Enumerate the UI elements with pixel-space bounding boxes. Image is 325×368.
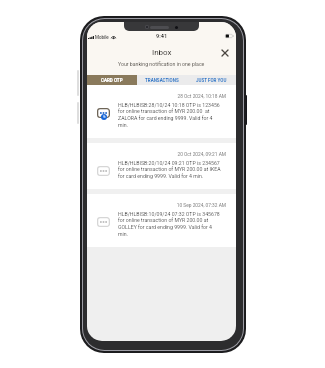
staticText: JUST FOR YOU (196, 78, 227, 83)
staticText: Your banking notification in one place (118, 61, 205, 67)
button[interactable]: TRANSACTIONS (137, 75, 186, 85)
staticText: Inbox (152, 48, 172, 57)
staticText: HLB/HLBISB:10/09/24 07:32 OTP is 345678 … (118, 211, 222, 238)
staticText: 28 Oct 2024, 10:18 AM (97, 94, 226, 100)
staticText: 10 Sep 2024, 07:32 AM (97, 203, 226, 209)
button[interactable]: JUST FOR YOU (186, 75, 236, 85)
staticText: HLB/HLBISB:28/10/24 10:18 OTP is 123456 … (118, 102, 222, 129)
button[interactable]: 28 Oct 2024, 10:18 AM (87, 85, 236, 138)
button[interactable]: 10 Sep 2024, 07:32 AM (87, 194, 236, 247)
staticText: TRANSACTIONS (145, 78, 179, 83)
button[interactable]: CARD OTP (87, 75, 137, 85)
staticText: HLB/HLBISB:20/10/24 09:21 OTP is 234567 … (118, 160, 222, 180)
button[interactable]: 20 Oct 2024, 09:21 AM (87, 143, 236, 189)
staticText: CARD OTP (101, 78, 123, 83)
staticText: 20 Oct 2024, 09:21 AM (97, 152, 226, 158)
button[interactable]: Close (218, 46, 231, 59)
staticText: 9:41 (156, 33, 168, 40)
staticText: Mobile (95, 35, 109, 40)
